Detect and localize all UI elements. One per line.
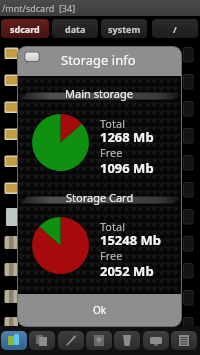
- button[interactable]: Toolbar action 4: [86, 331, 112, 350]
- staticText: Total: [100, 219, 125, 234]
- staticText: Free: [100, 248, 123, 263]
- staticText: Main storage: [65, 86, 134, 101]
- button[interactable]: Toolbar action 5: [114, 331, 140, 350]
- button[interactable]: Ok: [18, 294, 181, 326]
- staticText: data: [65, 23, 86, 35]
- button[interactable]: Toolbar action 1: [1, 331, 27, 350]
- staticText: system: [108, 23, 141, 35]
- button[interactable]: Toolbar action 3: [58, 331, 84, 350]
- button[interactable]: Toolbar action 2: [29, 331, 55, 350]
- staticText: Free: [100, 145, 123, 160]
- staticText: /mnt/sdcard [34]: [2, 2, 76, 14]
- button[interactable]: /: [152, 19, 198, 38]
- staticText: Ok: [93, 303, 107, 317]
- button[interactable]: system: [101, 19, 147, 38]
- button[interactable]: Toolbar action 7: [171, 331, 197, 350]
- staticText: sdcard: [10, 23, 40, 35]
- staticText: Storage info: [61, 51, 136, 69]
- staticText: Total: [100, 116, 125, 131]
- staticText: Storage Card: [66, 190, 134, 205]
- staticText: 2052 Mb: [100, 262, 154, 280]
- staticText: 15248 Mb: [100, 231, 162, 249]
- staticText: 1268 Mb: [100, 128, 154, 146]
- staticText: /: [173, 23, 177, 35]
- button[interactable]: sdcard: [1, 19, 49, 38]
- button[interactable]: Toolbar action 6: [143, 331, 169, 350]
- staticText: 1096 Mb: [100, 159, 154, 177]
- button[interactable]: data: [52, 19, 98, 38]
